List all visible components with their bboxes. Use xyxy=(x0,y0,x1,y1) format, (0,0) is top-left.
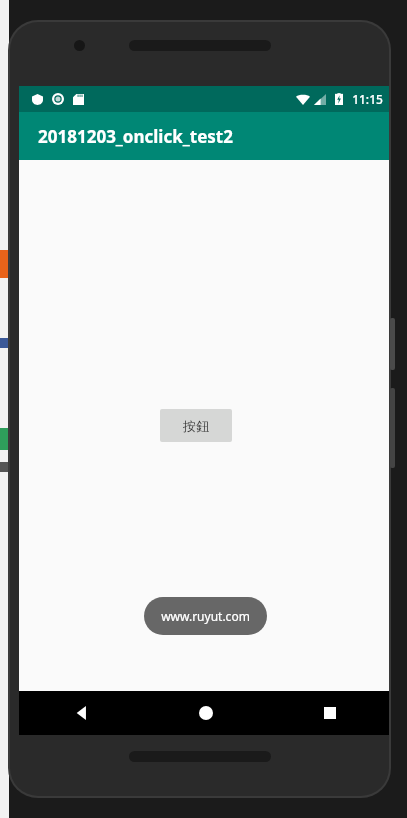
button[interactable]: 20181203_onclick_test2 xyxy=(19,112,389,160)
button[interactable]: 按鈕 xyxy=(160,409,232,442)
button[interactable]: Back xyxy=(19,691,144,735)
staticText: 11:15 xyxy=(352,91,383,107)
button[interactable]: Recent apps xyxy=(268,691,389,735)
staticText: 20181203_onclick_test2 xyxy=(38,125,233,148)
staticText: 按鈕 xyxy=(183,418,209,434)
staticText: www.ruyut.com xyxy=(161,608,250,624)
button[interactable]: Home xyxy=(144,691,268,735)
